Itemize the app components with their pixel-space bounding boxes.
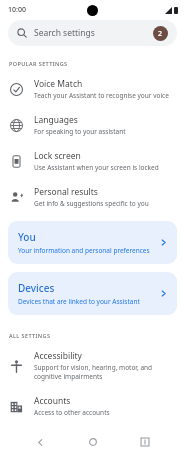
button[interactable]: Recent apps <box>132 430 158 454</box>
staticText: Use Assistant when your screen is locked <box>34 163 159 172</box>
staticText: Access to other accounts <box>34 408 110 417</box>
staticText: Accessibility <box>34 350 82 362</box>
staticText: ALL SETTINGS <box>9 332 51 339</box>
staticText: You <box>18 230 36 244</box>
button[interactable]: Home <box>80 430 106 454</box>
staticText: 10:00 <box>8 5 26 15</box>
staticText: Search settings <box>34 27 95 39</box>
button[interactable]: Google Account <box>153 26 168 41</box>
staticText: Get info & suggestions specific to you <box>34 199 149 208</box>
button[interactable]: Devices <box>8 272 177 315</box>
button[interactable]: You <box>8 221 177 264</box>
staticText: Personal results <box>34 186 98 198</box>
button[interactable]: Search settings <box>8 20 177 46</box>
button[interactable]: Languages <box>0 107 185 143</box>
staticText: Teach your Assistant to recognise your v… <box>34 91 169 100</box>
staticText: Devices that are linked to your Assistan… <box>18 297 140 306</box>
button[interactable]: Accessibility <box>0 343 185 388</box>
button[interactable]: Back <box>27 430 53 454</box>
staticText: Your information and personal preference… <box>18 246 150 255</box>
staticText: POPULAR SETTINGS <box>9 60 68 67</box>
staticText: Devices <box>18 281 55 295</box>
staticText: Languages <box>34 114 78 126</box>
staticText: Voice Match <box>34 78 83 90</box>
staticText: Lock screen <box>34 150 81 162</box>
button[interactable]: Personal results <box>0 179 185 215</box>
staticText: 2 <box>158 29 163 39</box>
staticText: For speaking to your assistant <box>34 127 126 136</box>
staticText: Support for vision, hearing, motor, and … <box>34 363 173 381</box>
button[interactable]: Accounts <box>0 388 185 424</box>
button[interactable]: Lock screen <box>0 143 185 179</box>
staticText: Accounts <box>34 395 71 407</box>
button[interactable]: Voice Match <box>0 71 185 107</box>
